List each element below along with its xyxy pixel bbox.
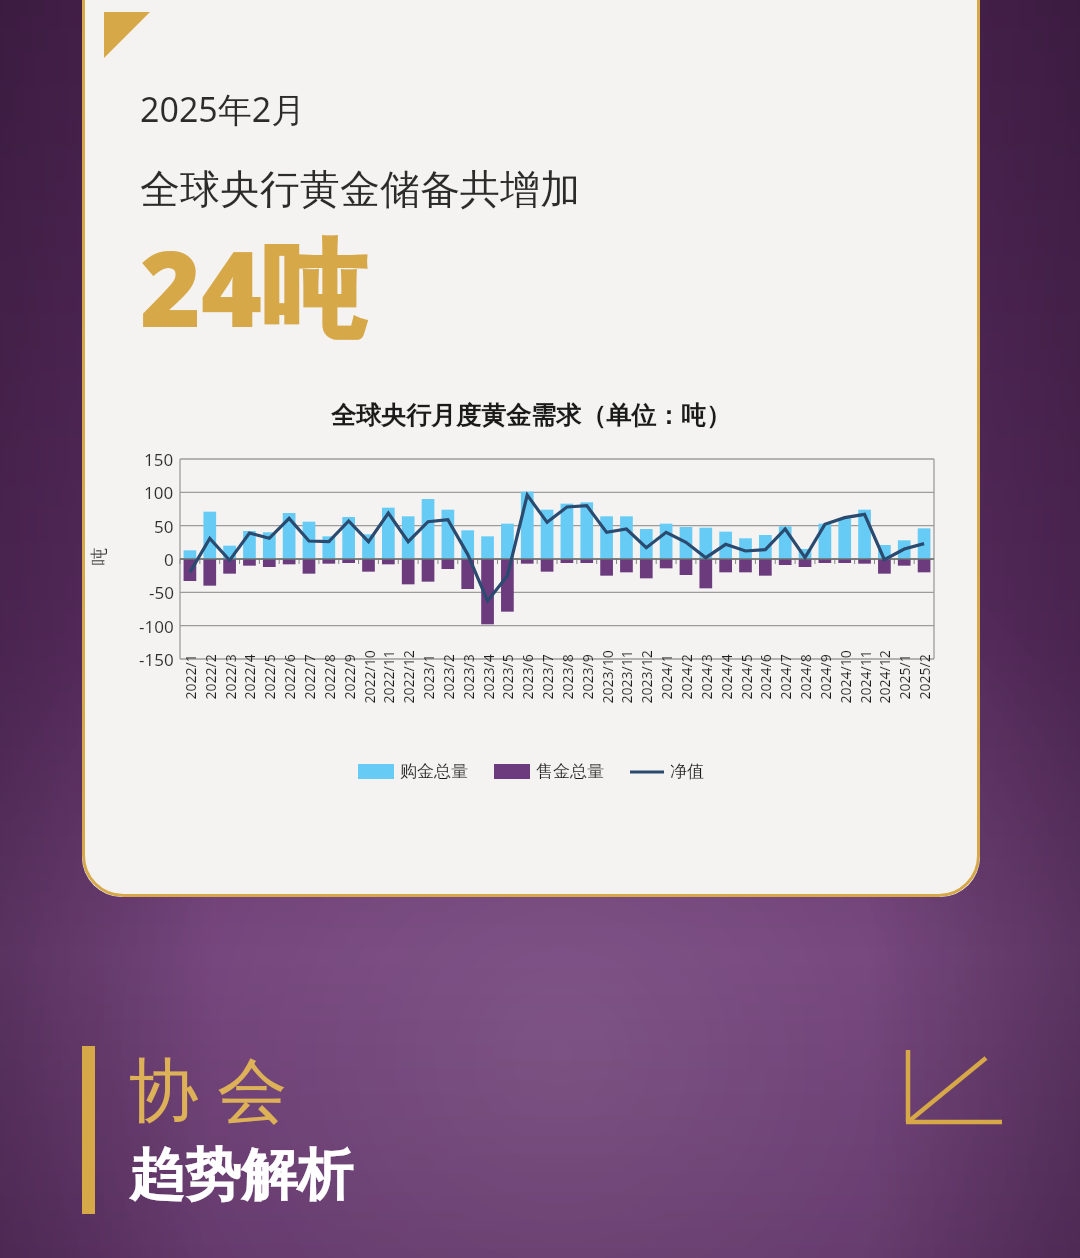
staticText: 2024/10 (835, 649, 854, 703)
staticText: 2023/12 (636, 649, 655, 703)
staticText: -150 (139, 648, 174, 671)
button[interactable]: 2025年2月 (82, 0, 980, 897)
staticText: 2023/2 (438, 653, 457, 699)
staticText: 2025/1 (894, 653, 913, 699)
staticText: 2022/12 (398, 649, 417, 703)
staticText: 2022/4 (239, 653, 258, 699)
staticText: 2025年2月 (140, 86, 306, 132)
staticText: 2022/5 (259, 653, 278, 699)
staticText: 趋势解析 (129, 1140, 353, 1211)
button[interactable]: 协 会 (82, 1040, 353, 1211)
staticText: 协 会 (129, 1040, 288, 1136)
staticText: 0 (164, 548, 174, 571)
staticText: 2024/4 (716, 653, 735, 699)
staticText: 24吨 (140, 216, 366, 358)
staticText: 2024/6 (755, 653, 774, 699)
staticText: 2022/1 (180, 653, 199, 699)
staticText: -100 (139, 615, 174, 638)
staticText: 2023/5 (497, 653, 516, 699)
staticText: 购金总量 (400, 761, 468, 782)
staticText: 2024/11 (855, 649, 874, 703)
staticText: 2025/2 (914, 653, 933, 699)
other: Trend arrow (900, 1042, 1010, 1152)
staticText: 2024/1 (656, 653, 675, 699)
staticText: 2024/8 (795, 653, 814, 699)
staticText: 吨 (87, 547, 110, 565)
staticText: 2022/3 (220, 653, 239, 699)
staticText: 2022/11 (378, 649, 397, 703)
staticText: 2023/8 (557, 653, 576, 699)
staticText: 2022/7 (299, 653, 318, 699)
staticText: 2023/10 (597, 649, 616, 703)
staticText: 2024/5 (736, 653, 755, 699)
staticText: 2024/12 (874, 649, 893, 703)
staticText: 2024/3 (696, 653, 715, 699)
staticText: 净值 (670, 761, 704, 782)
staticText: 2023/3 (458, 653, 477, 699)
staticText: 2023/1 (418, 653, 437, 699)
staticText: 2023/6 (517, 653, 536, 699)
staticText: 2022/2 (200, 653, 219, 699)
staticText: 2022/8 (319, 653, 338, 699)
staticText: 2024/2 (676, 653, 695, 699)
staticText: 2022/10 (359, 649, 378, 703)
staticText: -50 (149, 581, 174, 604)
staticText: 2023/7 (537, 653, 556, 699)
staticText: 全球央行黄金储备共增加 (140, 164, 580, 214)
staticText: 售金总量 (536, 761, 604, 782)
staticText: 2023/11 (616, 649, 635, 703)
staticText: 2024/7 (775, 653, 794, 699)
staticText: 100 (144, 481, 174, 504)
staticText: 50 (154, 515, 174, 538)
staticText: 2024/9 (815, 653, 834, 699)
staticText: 2022/9 (339, 653, 358, 699)
staticText: 全球央行月度黄金需求（单位：吨） (331, 400, 731, 431)
staticText: 2023/9 (577, 653, 596, 699)
staticText: 2023/4 (478, 653, 497, 699)
staticText: 2022/6 (279, 653, 298, 699)
staticText: 150 (144, 448, 174, 471)
